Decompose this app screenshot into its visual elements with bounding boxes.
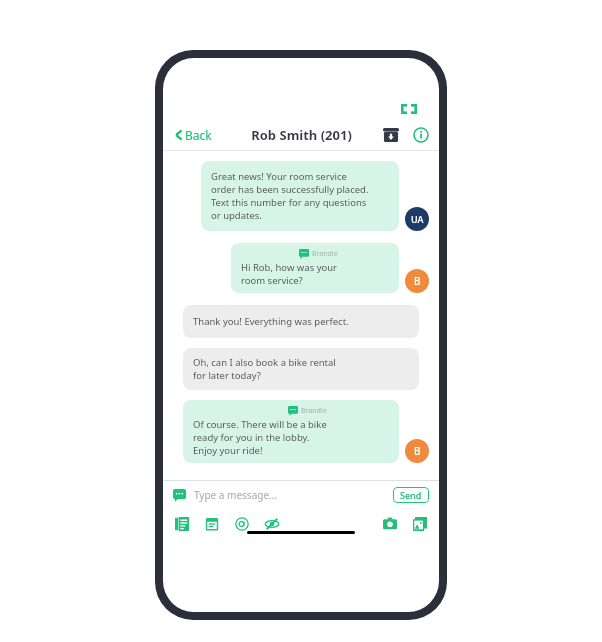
button[interactable]: Templates [175, 517, 189, 531]
button[interactable]: Brandie [231, 243, 399, 293]
staticText: Type a message... [194, 488, 278, 502]
button[interactable]: B [405, 269, 429, 293]
button[interactable]: Send [393, 487, 429, 503]
button[interactable]: Great news! Your room service order has … [201, 161, 399, 231]
staticText: Brandie [312, 249, 338, 259]
staticText: Rob Smith (201) [251, 126, 352, 144]
button[interactable]: Camera [383, 517, 397, 531]
button[interactable]: Info [413, 127, 429, 143]
button[interactable]: B [405, 439, 429, 463]
staticText: Back [185, 127, 212, 143]
button[interactable]: Expand [401, 104, 417, 114]
staticText: B [414, 274, 421, 288]
staticText: Thank you! Everything was perfect. [193, 315, 349, 328]
staticText: Great news! Your room service order has … [211, 170, 369, 222]
button[interactable]: Oh, can I also book a bike rental for la… [183, 348, 419, 390]
button[interactable]: Calendar [205, 517, 219, 531]
button[interactable]: Mention [235, 517, 249, 531]
staticText: Oh, can I also book a bike rental for la… [193, 356, 336, 382]
staticText: UA [411, 213, 424, 225]
staticText: Send [400, 489, 422, 501]
staticText: Brandie [301, 406, 327, 416]
button[interactable]: Type a message... [194, 488, 393, 502]
button[interactable]: Hide [265, 517, 279, 531]
staticText: Hi Rob, how was your room service? [241, 261, 338, 287]
button[interactable]: UA [405, 207, 429, 231]
button[interactable]: Thank you! Everything was perfect. [183, 305, 419, 338]
staticText: Of course. There will be a bike ready fo… [193, 418, 327, 457]
staticText: B [414, 444, 421, 458]
button[interactable]: Gallery [413, 517, 427, 531]
button[interactable]: Brandie [183, 400, 399, 463]
button[interactable]: Back [171, 124, 214, 146]
button[interactable]: Archive [383, 127, 399, 143]
